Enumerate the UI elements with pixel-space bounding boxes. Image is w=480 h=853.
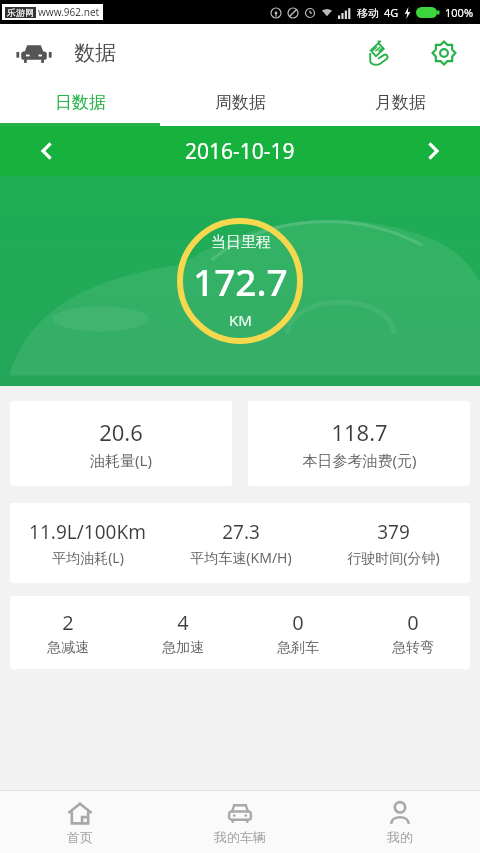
staticText: 27.3	[222, 519, 260, 545]
button[interactable]: 后一天	[416, 134, 450, 168]
staticText: 2016-10-19	[185, 137, 295, 166]
staticText: 11.9L/100Km	[29, 519, 146, 545]
staticText: 172.7	[193, 256, 288, 306]
staticText: 移动	[357, 6, 379, 20]
staticText: 4G	[384, 5, 399, 20]
staticText: 118.7	[331, 417, 388, 447]
staticText: 油耗量(L)	[90, 450, 152, 470]
staticText: 0	[292, 609, 304, 636]
staticText: 周数据	[215, 92, 266, 113]
staticText: KM	[229, 310, 252, 330]
button[interactable]: 周数据	[160, 81, 320, 123]
staticText: 急加速	[162, 639, 204, 657]
staticText: 2	[62, 609, 74, 636]
button[interactable]: 设置	[426, 35, 462, 71]
button[interactable]: 20.6	[10, 401, 232, 486]
staticText: 我的	[387, 829, 413, 845]
button[interactable]: 2	[10, 596, 470, 669]
staticText: 379	[377, 519, 410, 545]
staticText: 平均油耗(L)	[52, 548, 124, 567]
staticText: 我的车辆	[214, 829, 266, 845]
staticText: 20.6	[99, 417, 143, 447]
staticText: 首页	[67, 829, 93, 845]
staticText: 急减速	[47, 639, 89, 657]
button[interactable]: 前一天	[30, 134, 64, 168]
button[interactable]: 11.9L/100Km	[10, 503, 470, 583]
button[interactable]: 我的车辆	[160, 791, 320, 853]
staticText: 当日里程	[211, 233, 271, 252]
staticText: 急转弯	[392, 639, 434, 657]
staticText: 月数据	[375, 92, 426, 113]
staticText: 0	[407, 609, 419, 636]
button[interactable]: 我的	[320, 791, 480, 853]
staticText: 100%	[445, 5, 474, 20]
staticText: 日数据	[55, 92, 106, 113]
staticText: 4	[177, 609, 189, 636]
button[interactable]: 日数据	[0, 81, 160, 123]
button[interactable]: 月数据	[320, 81, 480, 123]
staticText: 数据	[74, 40, 116, 66]
staticText: 平均车速(KM/H)	[190, 548, 292, 567]
button[interactable]: 加油记录	[360, 35, 396, 71]
staticText: 本日参考油费(元)	[302, 450, 417, 470]
staticText: 急刹车	[277, 639, 319, 657]
staticText: 乐游网	[7, 7, 34, 18]
staticText: www.962.net	[38, 5, 100, 19]
button[interactable]: 118.7	[248, 401, 470, 486]
button[interactable]: 首页	[0, 791, 160, 853]
staticText: 行驶时间(分钟)	[347, 548, 440, 567]
